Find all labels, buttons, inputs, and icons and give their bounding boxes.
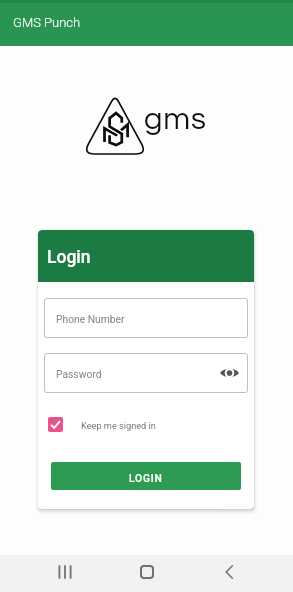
staticText: Keep me signed in [81,420,156,431]
staticText: Password [56,368,102,380]
staticText: Login [47,247,91,268]
button[interactable]: Home [129,554,165,590]
staticText: Phone Number [56,313,125,325]
button[interactable]: Phone Number [44,298,248,338]
button[interactable]: Keep me signed in [48,417,156,432]
button[interactable]: GMS Punch [0,0,293,46]
staticText: LOGIN [129,472,163,484]
button[interactable]: Password [44,353,248,393]
button[interactable]: Recents [46,554,82,590]
staticText: gms [144,104,207,136]
staticText: GMS Punch [13,15,81,30]
button[interactable]: LOGIN [51,462,241,490]
button[interactable]: Show password [218,362,240,384]
button[interactable]: Back [211,554,247,590]
